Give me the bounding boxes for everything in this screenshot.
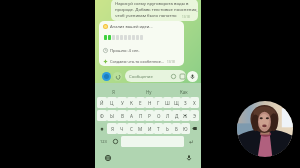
button[interactable]: Н bbox=[145, 97, 154, 108]
staticText: ↵ bbox=[189, 138, 195, 145]
staticText: Я bbox=[112, 89, 115, 95]
button[interactable]: Attach file bbox=[113, 72, 122, 81]
staticText: А bbox=[130, 113, 133, 119]
button[interactable]: Ж bbox=[181, 110, 190, 121]
button[interactable]: К bbox=[127, 97, 136, 108]
button[interactable]: Bot menu bbox=[102, 72, 111, 81]
button[interactable]: 123 bbox=[97, 136, 110, 147]
button[interactable]: Enter bbox=[185, 136, 199, 147]
staticText: 123 bbox=[100, 139, 107, 144]
button[interactable]: Ч bbox=[117, 123, 127, 134]
staticText: Е bbox=[139, 100, 142, 106]
button[interactable]: Э bbox=[190, 110, 199, 121]
button[interactable]: Б bbox=[172, 123, 181, 134]
button[interactable]: Emoji bbox=[169, 72, 177, 80]
staticText: Ф bbox=[100, 113, 104, 119]
staticText: З bbox=[184, 100, 187, 106]
staticText: Б bbox=[175, 126, 178, 132]
button[interactable]: З bbox=[181, 97, 190, 108]
button[interactable]: В bbox=[117, 110, 127, 121]
staticText: С bbox=[130, 126, 133, 132]
button[interactable]: Сообщение bbox=[125, 70, 186, 82]
button[interactable]: Г bbox=[154, 97, 163, 108]
staticText: Х bbox=[193, 100, 196, 106]
button[interactable]: Х bbox=[190, 97, 199, 108]
staticText: У bbox=[121, 100, 124, 106]
staticText: Я bbox=[111, 126, 114, 132]
button[interactable]: Ь bbox=[163, 123, 172, 134]
button[interactable]: Нарисуй схему круговорота воды в природе… bbox=[111, 0, 198, 21]
staticText: Щ bbox=[174, 100, 179, 106]
button[interactable]: Ш bbox=[163, 97, 172, 108]
button[interactable]: Ы bbox=[107, 110, 117, 121]
button[interactable]: Д bbox=[172, 110, 181, 121]
button[interactable]: Л bbox=[163, 110, 172, 121]
staticText: Ы bbox=[110, 113, 114, 119]
staticText: О bbox=[157, 113, 161, 119]
button[interactable]: Backspace bbox=[190, 123, 199, 134]
staticText: Э bbox=[193, 113, 196, 119]
staticText: Ж bbox=[183, 113, 188, 119]
button[interactable]: Анализ вашей идеи... bbox=[99, 21, 184, 66]
staticText: Ч bbox=[120, 126, 124, 132]
staticText: В bbox=[121, 113, 124, 119]
staticText: 13:18 bbox=[167, 60, 175, 64]
staticText: Нарисуй схему круговорота воды в природе… bbox=[115, 0, 198, 18]
button[interactable]: Я bbox=[107, 123, 117, 134]
staticText: Й bbox=[100, 100, 104, 106]
button[interactable]: Shift bbox=[97, 123, 107, 134]
staticText: Как bbox=[180, 89, 188, 95]
staticText: Создаем что-то особенное... bbox=[110, 59, 164, 64]
button[interactable]: Я bbox=[95, 87, 131, 96]
staticText: И bbox=[148, 126, 152, 132]
button[interactable]: Р bbox=[145, 110, 154, 121]
staticText: П bbox=[139, 113, 143, 119]
button[interactable]: Emoji keyboard bbox=[110, 136, 120, 147]
button[interactable]: Ф bbox=[97, 110, 107, 121]
button[interactable]: Т bbox=[154, 123, 163, 134]
button[interactable]: Stickers bbox=[178, 72, 186, 80]
button[interactable]: Как bbox=[166, 87, 201, 96]
staticText: Ь bbox=[166, 126, 169, 132]
button[interactable]: М bbox=[136, 123, 145, 134]
button[interactable]: Voice input bbox=[184, 153, 193, 162]
button[interactable]: Щ bbox=[172, 97, 181, 108]
staticText: Д bbox=[175, 113, 179, 119]
button[interactable]: О bbox=[154, 110, 163, 121]
staticText: Ю bbox=[183, 126, 188, 132]
staticText: Анализ вашей идеи... bbox=[110, 24, 153, 30]
other: Video call participant bbox=[237, 101, 293, 157]
staticText: Р bbox=[148, 113, 151, 119]
button[interactable]: Ну bbox=[131, 87, 166, 96]
button[interactable]: Е bbox=[136, 97, 145, 108]
staticText: Ш bbox=[165, 100, 170, 106]
staticText: Т bbox=[157, 126, 160, 132]
staticText: Л bbox=[166, 113, 170, 119]
button[interactable]: Change keyboard language bbox=[103, 153, 112, 162]
button[interactable]: С bbox=[127, 123, 136, 134]
button[interactable]: Record voice message bbox=[187, 71, 198, 82]
staticText: Сообщение bbox=[129, 74, 153, 80]
button[interactable]: П bbox=[136, 110, 145, 121]
button[interactable]: А bbox=[127, 110, 136, 121]
staticText: 13:18 bbox=[182, 15, 190, 19]
staticText: Ну bbox=[146, 89, 152, 95]
staticText: К bbox=[130, 100, 133, 106]
button[interactable]: И bbox=[145, 123, 154, 134]
staticText: Прошло: 4 сек. bbox=[110, 48, 140, 54]
button[interactable]: Ю bbox=[181, 123, 190, 134]
staticText: М bbox=[138, 126, 143, 132]
staticText: Н bbox=[148, 100, 152, 106]
staticText: Ц bbox=[110, 100, 114, 106]
button[interactable]: Ц bbox=[107, 97, 117, 108]
button[interactable]: У bbox=[117, 97, 127, 108]
staticText: Г bbox=[157, 100, 160, 106]
button[interactable]: Й bbox=[97, 97, 107, 108]
